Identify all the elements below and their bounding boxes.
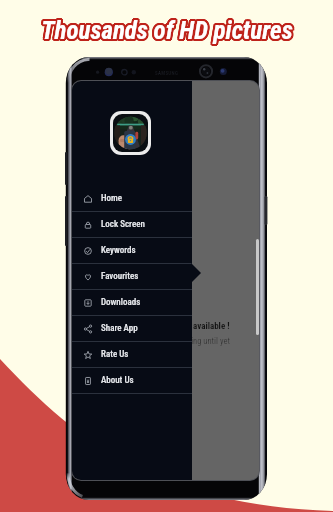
button[interactable]: Share App [72,316,192,341]
staticText: Thousands of HD pictures [39,15,291,44]
staticText: Downloads [101,297,141,308]
staticText: Thousands of HD pictures [40,18,292,47]
staticText: Thousands of HD pictures [39,17,291,46]
button[interactable]: Favourites [72,264,192,289]
button[interactable]: Rate Us [72,342,192,367]
staticText: Home [101,193,123,204]
staticText: Thousands of HD pictures [43,16,295,45]
button[interactable]: About Us [72,368,192,393]
staticText: Image not available ! [155,321,230,332]
staticText: Lock Screen [101,219,145,230]
staticText: Thousands of HD pictures [40,14,292,43]
staticText: Thousands of HD pictures [39,15,291,44]
staticText: Thousands of HD pictures [40,18,292,47]
staticText: Favourites [101,271,139,282]
button[interactable]: Downloads [72,290,192,315]
staticText: About Us [101,375,134,386]
staticText: Thousands of HD pictures [42,18,294,47]
button[interactable]: Home [72,186,192,211]
staticText: Thousands of HD pictures [40,14,292,43]
button[interactable]: Lock Screen [72,212,192,237]
staticText: Share App [101,323,138,334]
staticText: Thousands of HD pictures [42,14,294,43]
staticText: Thousands of HD pictures [41,16,293,45]
staticText: Rate Us [101,349,129,360]
staticText: Thousands of HD pictures [41,18,293,47]
staticText: Keywords [101,245,136,256]
staticText: Nothing until yet [175,336,230,346]
staticText: Thousands of HD pictures [42,18,294,47]
staticText: Thousands of HD pictures [39,16,291,45]
staticText: Thousands of HD pictures [39,17,291,46]
staticText: Thousands of HD pictures [43,15,295,44]
button[interactable]: Keywords [72,238,192,263]
staticText: SAMSUNG [155,70,179,76]
staticText: Thousands of HD pictures [42,14,294,43]
staticText: Thousands of HD pictures [41,14,293,43]
staticText: Thousands of HD pictures [43,17,295,46]
staticText: Thousands of HD pictures [43,15,295,44]
staticText: Thousands of HD pictures [43,17,295,46]
